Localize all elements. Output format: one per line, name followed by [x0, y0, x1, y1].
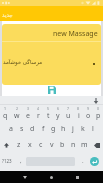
staticText: y — [56, 111, 60, 121]
staticText: . — [82, 157, 84, 165]
button[interactable]: k — [78, 121, 88, 137]
button[interactable]: n — [68, 137, 79, 153]
staticText: 7 — [67, 106, 70, 111]
staticText: 2 — [16, 106, 19, 111]
button[interactable]: j — [68, 121, 78, 137]
button[interactable]: 7 — [63, 105, 73, 121]
button[interactable]: Expand suggestions — [94, 98, 98, 104]
staticText: s — [20, 124, 24, 134]
staticText: z — [17, 140, 21, 150]
staticText: c — [39, 140, 43, 150]
staticText: u — [66, 111, 71, 121]
other: Shift — [4, 143, 9, 148]
staticText: o — [86, 111, 91, 121]
staticText: h — [61, 124, 66, 134]
staticText: n — [71, 140, 76, 150]
button[interactable]: ?123 — [0, 153, 13, 169]
staticText: t — [47, 111, 50, 121]
staticText: x — [28, 140, 32, 150]
button[interactable]: d — [27, 121, 38, 137]
button[interactable]: m — [79, 137, 90, 153]
button[interactable]: 8 — [73, 105, 83, 121]
button[interactable]: 2 — [11, 105, 22, 121]
staticText: k — [81, 124, 85, 134]
staticText: v — [50, 140, 54, 150]
button[interactable]: Save — [48, 86, 56, 94]
staticText: 6 — [57, 106, 60, 111]
button[interactable]: c — [35, 137, 46, 153]
staticText: q — [3, 111, 8, 121]
button[interactable]: v — [46, 137, 57, 153]
staticText: مرساگی خوشآمد — [3, 58, 43, 65]
button[interactable]: Shift — [0, 137, 13, 153]
button[interactable]: Backspace — [90, 137, 103, 153]
staticText: new Massage — [53, 29, 98, 39]
staticText: w — [14, 111, 20, 121]
staticText: f — [42, 124, 45, 134]
button[interactable]: b — [57, 137, 68, 153]
staticText: g — [51, 124, 56, 134]
staticText: e — [26, 111, 30, 121]
other: Backspace — [94, 143, 100, 148]
button[interactable]: z — [13, 137, 24, 153]
staticText: 9 — [87, 106, 90, 111]
staticText: d — [30, 124, 35, 134]
button[interactable]: 0 — [93, 105, 103, 121]
staticText: 4 — [37, 106, 40, 111]
button[interactable]: 6 — [53, 105, 63, 121]
button[interactable]: x — [24, 137, 35, 153]
staticText: 0 — [97, 106, 100, 111]
button[interactable]: Back — [11, 171, 38, 183]
staticText: 3 — [27, 106, 30, 111]
staticText: l — [92, 124, 94, 134]
staticText: b — [60, 140, 65, 150]
button[interactable]: 9 — [83, 105, 93, 121]
staticText: p — [96, 111, 101, 121]
staticText: i — [78, 111, 80, 121]
staticText: j — [72, 124, 74, 134]
staticText: m — [81, 140, 88, 150]
button[interactable]: . — [76, 153, 89, 169]
button[interactable]: 5 — [43, 105, 53, 121]
button[interactable]: Enter — [90, 157, 99, 166]
button[interactable]: f — [38, 121, 48, 137]
button[interactable]: 4 — [33, 105, 43, 121]
button[interactable]: g — [48, 121, 58, 137]
button[interactable]: 3 — [22, 105, 33, 121]
button[interactable]: s — [16, 121, 27, 137]
staticText: ?123 — [2, 158, 12, 164]
button[interactable]: , — [14, 153, 27, 169]
other: Home — [50, 176, 53, 179]
button[interactable]: 1 — [0, 105, 11, 121]
staticText: 1 — [4, 106, 7, 111]
button[interactable]: h — [58, 121, 68, 137]
button[interactable]: Home — [38, 171, 65, 183]
staticText: r — [37, 111, 40, 121]
staticText: 5 — [47, 106, 50, 111]
button[interactable]: a — [5, 121, 16, 137]
staticText: جدید — [2, 12, 13, 18]
staticText: 8 — [77, 106, 80, 111]
staticText: , — [20, 157, 22, 165]
staticText: a — [9, 124, 13, 134]
other: Back — [23, 176, 27, 179]
button[interactable]: Recents — [64, 171, 91, 183]
button[interactable]: l — [88, 121, 98, 137]
